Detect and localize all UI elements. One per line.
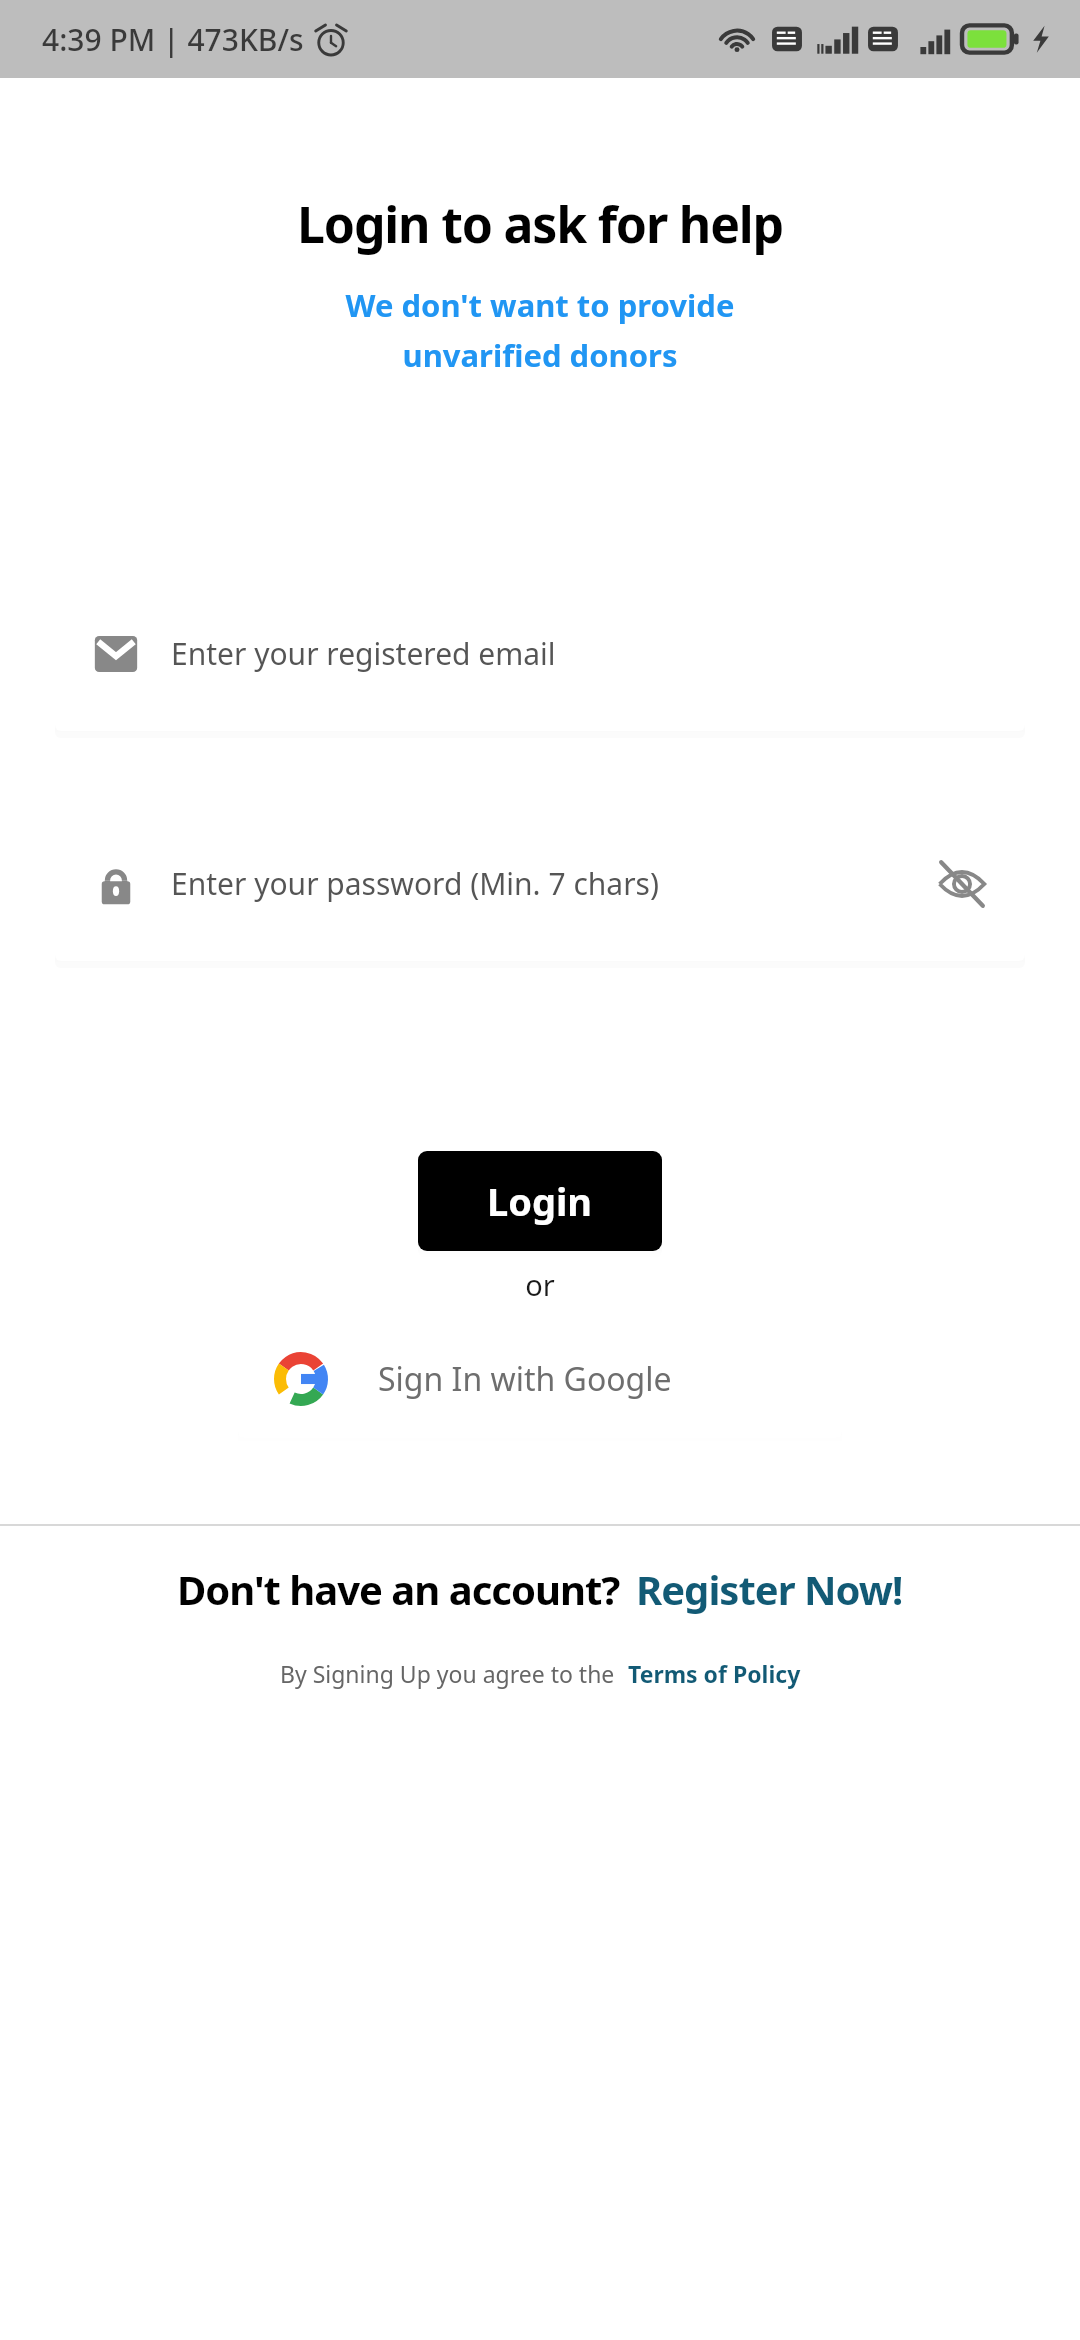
staticText: Login to ask for help [0,190,1080,258]
button[interactable]: Terms of Policy [628,1658,801,1689]
button[interactable]: Register Now! [636,1562,903,1616]
staticText: We don't want to provide unvarified dono… [90,284,990,376]
staticText: Enter your registered email [171,633,556,674]
staticText: or [0,1265,1080,1304]
staticText: By Signing Up you agree to the [280,1658,615,1689]
button[interactable]: Show password [933,855,991,913]
staticText: Sign In with Google [378,1357,672,1401]
button[interactable]: Sign In with Google [238,1320,842,1438]
staticText: Login [487,1175,593,1227]
staticText: Don't have an account? [177,1562,620,1616]
staticText: Register Now! [636,1562,903,1616]
staticText: Terms of Policy [628,1658,801,1689]
staticText: 4:39 PM | 473KB/s [42,19,304,60]
button[interactable]: Enter your password (Min. 7 chars) [55,806,1025,961]
button[interactable]: Enter your registered email [55,576,1025,731]
staticText: Enter your password (Min. 7 chars) [171,863,933,904]
button[interactable]: Login [418,1151,662,1251]
